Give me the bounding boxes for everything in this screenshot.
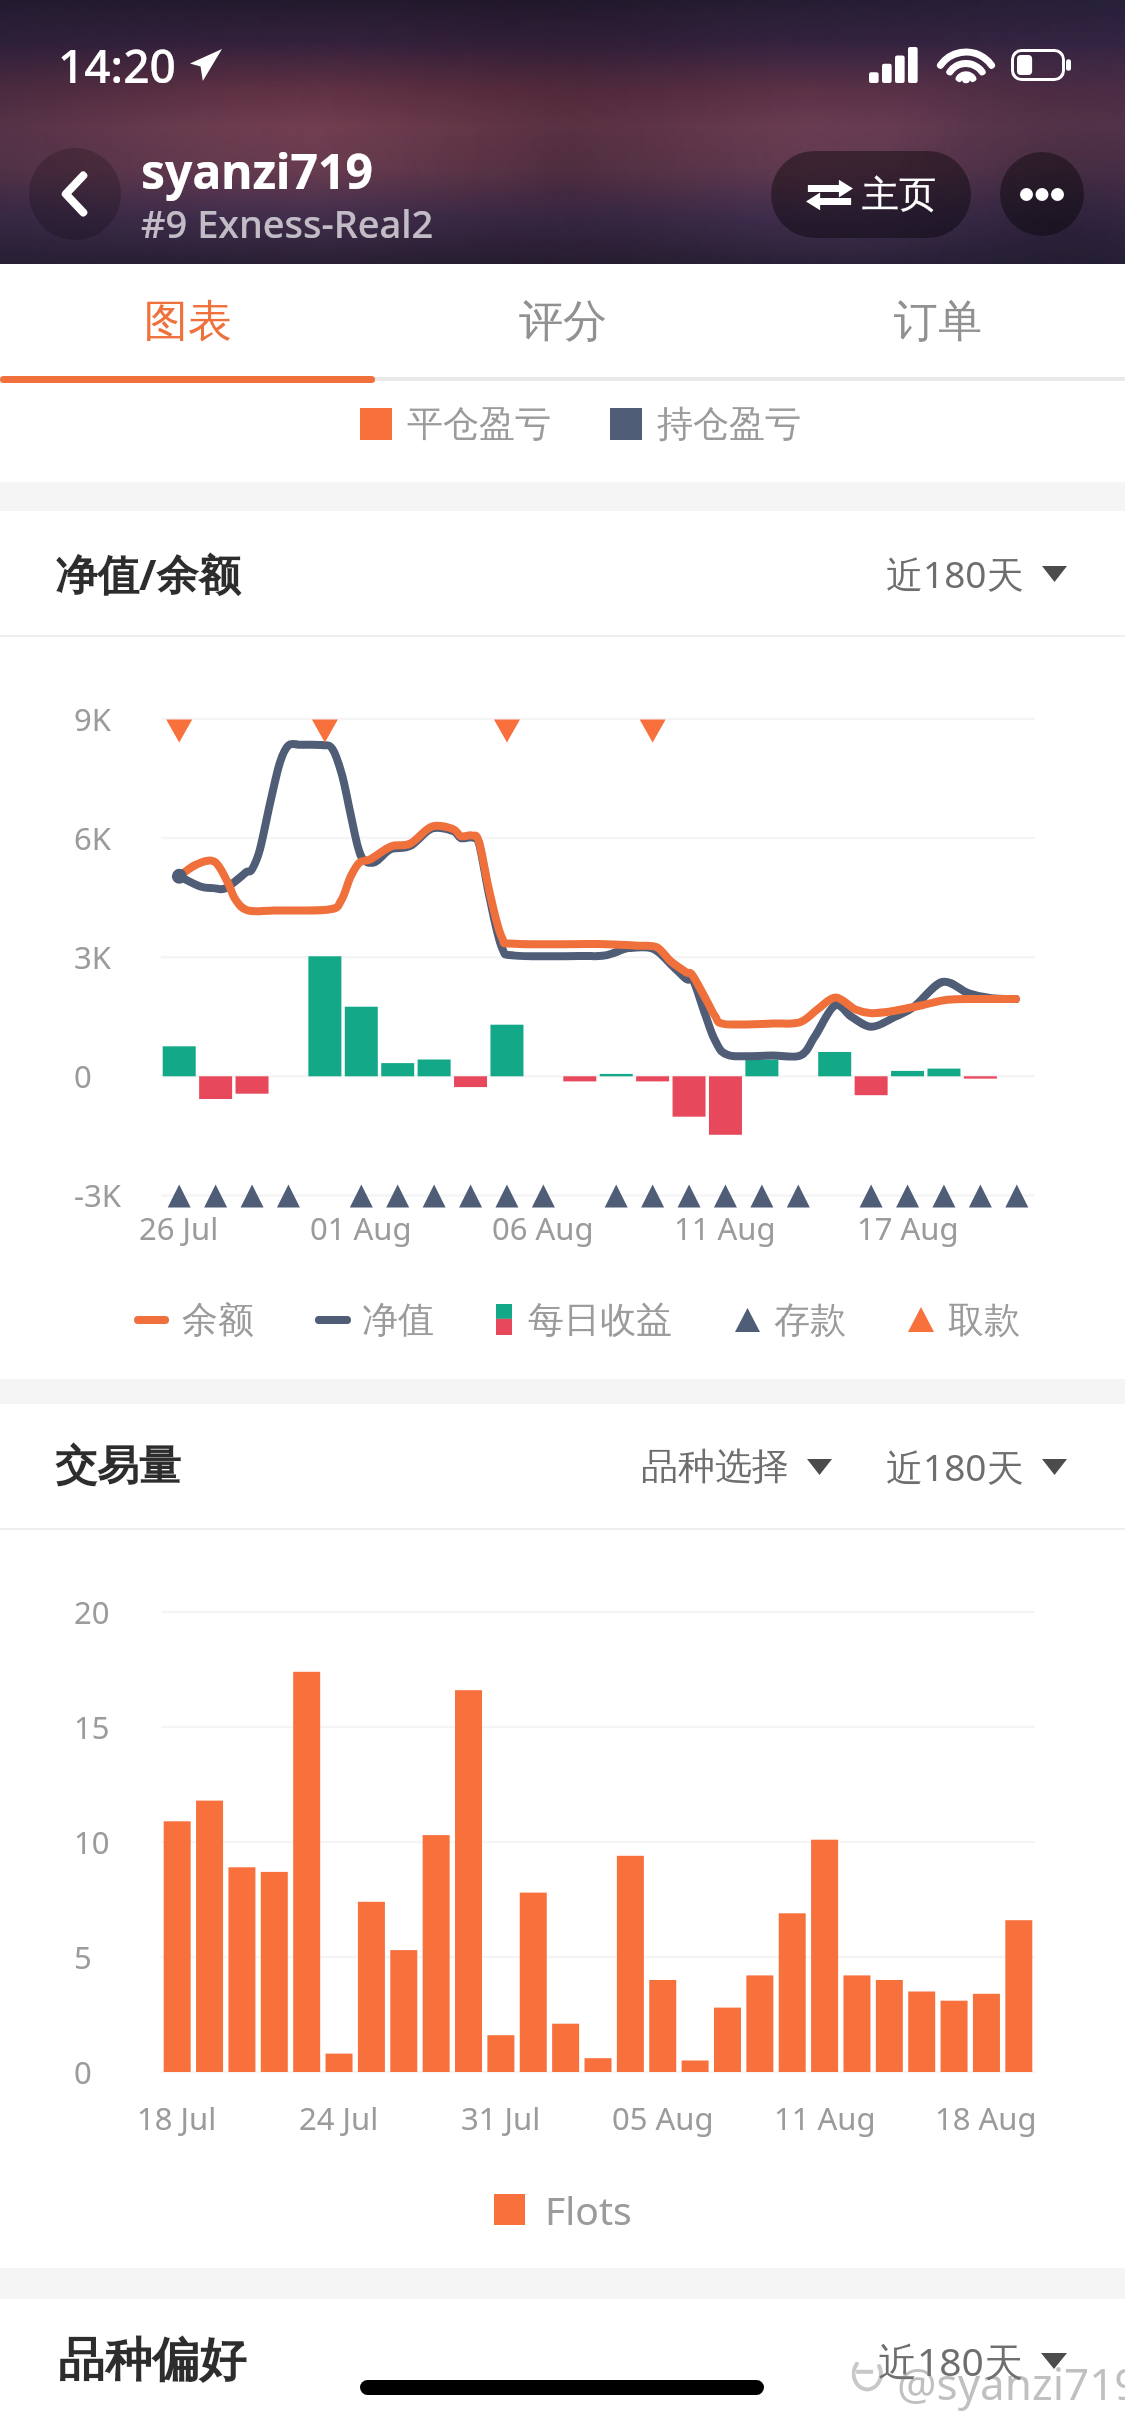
staticText: 6K (74, 817, 111, 859)
button[interactable]: Back (29, 148, 121, 240)
staticText: 11 Aug (774, 2097, 876, 2139)
staticText: 01 Aug (310, 1207, 412, 1249)
staticText: 5 (74, 1936, 92, 1978)
button[interactable]: 主页 (771, 151, 971, 238)
staticText: 10 (74, 1821, 110, 1863)
staticText: 0 (74, 2051, 92, 2093)
staticText: 26 Jul (139, 1207, 219, 1249)
staticText: 18 Aug (935, 2097, 1037, 2139)
staticText: 评分 (519, 294, 607, 349)
staticText: 近180天 (878, 2334, 1023, 2387)
staticText: 持仓盈亏 (657, 401, 801, 446)
button[interactable]: More options (1000, 152, 1084, 236)
staticText: 净值 (362, 1297, 434, 1342)
staticText: -3K (74, 1174, 121, 1216)
staticText: 近180天 (886, 548, 1024, 599)
staticText: syanzi719 (141, 138, 373, 203)
staticText: 20 (74, 1591, 110, 1633)
button[interactable]: 近180天 (886, 548, 1067, 599)
staticText: 15 (74, 1706, 110, 1748)
staticText: 近180天 (886, 1441, 1024, 1492)
staticText: 9K (74, 698, 111, 740)
staticText: 存款 (774, 1297, 846, 1342)
staticText: 交易量 (55, 1440, 181, 1493)
staticText: 净值/余额 (55, 545, 241, 602)
staticText: @syanzi719 (897, 2353, 1125, 2413)
staticText: 品种偏好 (58, 2331, 246, 2390)
button[interactable]: 近180天 (878, 2334, 1067, 2387)
staticText: 3K (74, 936, 111, 978)
button[interactable]: 订单 (750, 264, 1125, 378)
staticText: 06 Aug (492, 1207, 594, 1249)
button[interactable]: 评分 (375, 264, 750, 378)
staticText: 14:20 (58, 34, 176, 97)
staticText: Flots (545, 2183, 632, 2236)
staticText: 05 Aug (612, 2097, 714, 2139)
staticText: 18 Jul (137, 2097, 217, 2139)
button[interactable]: 品种选择 (641, 1443, 832, 1490)
staticText: 0 (74, 1055, 92, 1097)
staticText: 订单 (894, 294, 982, 349)
staticText: 11 Aug (674, 1207, 776, 1249)
staticText: 每日收益 (528, 1297, 672, 1342)
staticText: 主页 (862, 171, 936, 218)
staticText: 余额 (182, 1297, 254, 1342)
staticText: 图表 (144, 294, 232, 349)
staticText: #9 Exness-Real2 (141, 197, 434, 249)
button[interactable]: 近180天 (886, 1441, 1067, 1492)
staticText: 24 Jul (299, 2097, 379, 2139)
button[interactable]: 图表 (0, 264, 375, 378)
staticText: 品种选择 (641, 1443, 789, 1490)
staticText: 31 Jul (461, 2097, 541, 2139)
staticText: 平仓盈亏 (407, 401, 551, 446)
staticText: 17 Aug (857, 1207, 959, 1249)
staticText: 取款 (948, 1297, 1020, 1342)
